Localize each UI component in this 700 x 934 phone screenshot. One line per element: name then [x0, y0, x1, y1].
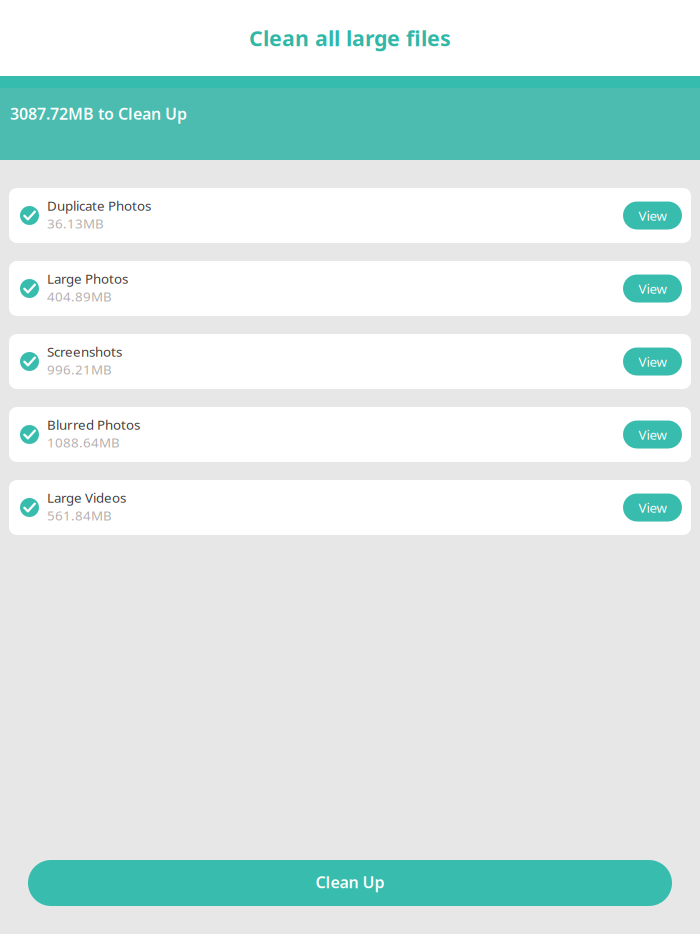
button[interactable]: Deselect Blurred Photos [20, 425, 39, 444]
button[interactable]: Deselect Duplicate Photos [20, 206, 39, 225]
staticText: Blurred Photos [47, 416, 140, 433]
button[interactable]: Duplicate Photos [9, 188, 691, 243]
staticText: 36.13MB [47, 214, 104, 232]
staticText: 3087.72MB to Clean Up [10, 103, 187, 124]
staticText: View [638, 280, 666, 297]
staticText: View [638, 353, 666, 370]
button[interactable]: View [623, 493, 682, 521]
staticText: Screenshots [47, 343, 122, 360]
staticText: View [638, 426, 666, 443]
button[interactable]: View [623, 347, 682, 375]
staticText: 1088.64MB [47, 433, 120, 451]
staticText: Clean all large files [249, 24, 451, 52]
button[interactable]: Deselect Large Videos [20, 498, 39, 517]
staticText: Clean Up [315, 871, 384, 893]
staticText: Large Photos [47, 270, 128, 287]
staticText: View [638, 207, 666, 224]
staticText: View [638, 499, 666, 516]
button[interactable]: View [623, 274, 682, 302]
button[interactable]: Clean Up [28, 860, 672, 906]
button[interactable]: Deselect Large Photos [20, 279, 39, 298]
button[interactable]: View [623, 420, 682, 448]
staticText: 996.21MB [47, 360, 112, 378]
button[interactable]: Deselect Screenshots [20, 352, 39, 371]
button[interactable]: Blurred Photos [9, 407, 691, 462]
staticText: Large Videos [47, 489, 126, 506]
staticText: 561.84MB [47, 506, 112, 524]
staticText: 404.89MB [47, 287, 112, 305]
button[interactable]: Large Photos [9, 261, 691, 316]
button[interactable]: View [623, 201, 682, 229]
staticText: Duplicate Photos [47, 197, 151, 214]
button[interactable]: Screenshots [9, 334, 691, 389]
button[interactable]: Large Videos [9, 480, 691, 535]
